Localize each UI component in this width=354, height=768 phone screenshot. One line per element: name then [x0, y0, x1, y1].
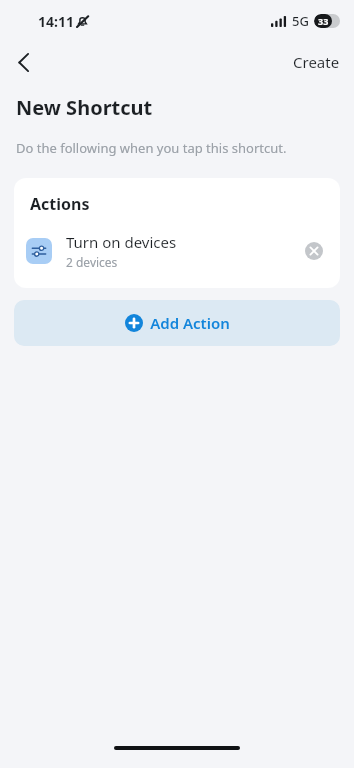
staticText: Turn on devices [66, 232, 177, 252]
staticText: Actions [30, 193, 90, 215]
staticText: 33 [318, 15, 329, 27]
staticText: Create [293, 52, 340, 72]
staticText: 5G [292, 12, 309, 30]
staticText: 14:11 [38, 12, 74, 31]
button[interactable]: Remove action [300, 237, 328, 265]
button[interactable]: Create [287, 48, 346, 76]
staticText: 2 devices [66, 254, 118, 270]
button[interactable]: Add Action [14, 300, 340, 346]
staticText: Do the following when you tap this short… [16, 139, 287, 157]
button[interactable]: Back [6, 45, 40, 79]
staticText: Add Action [150, 313, 230, 333]
button[interactable]: Turn on devices [14, 232, 340, 270]
staticText: New Shortcut [16, 94, 153, 121]
